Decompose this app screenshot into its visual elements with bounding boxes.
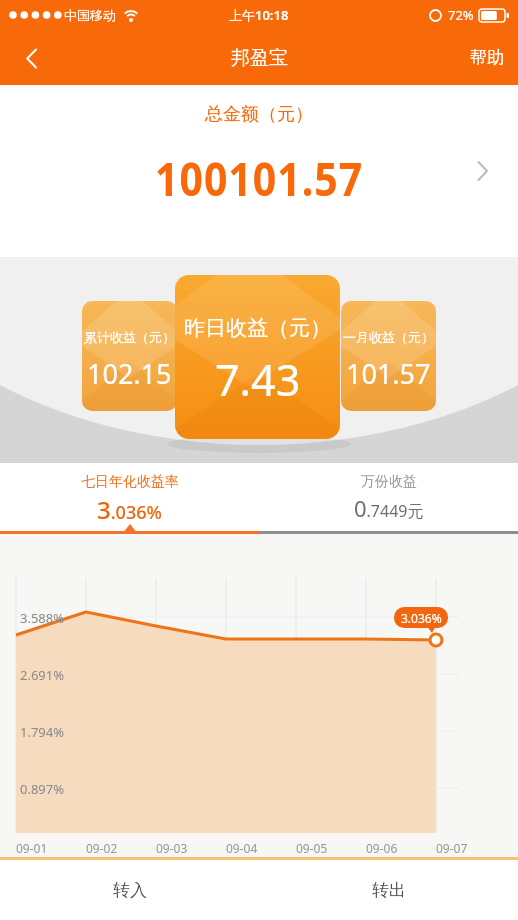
staticText: 七日年化收益率 xyxy=(81,473,179,491)
staticText: 3.588% xyxy=(20,609,65,627)
staticText: 0.897% xyxy=(20,780,65,798)
button[interactable]: 万份收益 xyxy=(259,463,518,531)
staticText: 100101.57 xyxy=(155,146,364,210)
staticText: 帮助 xyxy=(470,47,504,68)
button[interactable]: 昨日收益（元） xyxy=(175,275,340,439)
staticText: 上午10:18 xyxy=(229,6,289,24)
staticText: 万份收益 xyxy=(361,473,417,491)
button[interactable]: 转出 xyxy=(259,860,518,920)
button[interactable]: 七日年化收益率 xyxy=(0,463,259,531)
staticText: 101.57 xyxy=(346,355,431,392)
button[interactable]: 累计收益（元） xyxy=(82,301,177,411)
staticText: 转出 xyxy=(372,880,406,901)
button[interactable]: 帮助 xyxy=(456,35,518,80)
button[interactable]: 转入 xyxy=(0,860,259,920)
button[interactable]: 总金额（元） xyxy=(0,85,518,257)
staticText: 09-06 xyxy=(366,840,398,856)
staticText: 09-04 xyxy=(226,840,258,856)
staticText: 1.794% xyxy=(20,723,65,741)
button[interactable]: 一月收益（元） xyxy=(341,301,436,411)
staticText: 72% xyxy=(448,6,474,24)
staticText: 09-07 xyxy=(436,840,468,856)
button[interactable] xyxy=(16,43,46,73)
staticText: 一月收益（元） xyxy=(343,329,434,345)
staticText: 邦盈宝 xyxy=(231,46,288,70)
staticText: 09-02 xyxy=(86,840,118,856)
staticText: 转入 xyxy=(113,880,147,901)
staticText: 7.43 xyxy=(215,350,301,409)
staticText: 中国移动 xyxy=(64,7,116,23)
staticText: 2.691% xyxy=(20,666,65,684)
staticText: 09-05 xyxy=(296,840,328,856)
staticText: 102.15 xyxy=(87,355,172,392)
staticText: 0.7449元 xyxy=(354,493,424,523)
staticText: 昨日收益（元） xyxy=(184,315,331,341)
staticText: 3.036% xyxy=(401,610,442,626)
staticText: 累计收益（元） xyxy=(84,329,175,345)
staticText: 09-03 xyxy=(156,840,188,856)
staticText: 3.036% xyxy=(97,493,162,526)
staticText: 09-01 xyxy=(16,840,48,856)
staticText: 总金额（元） xyxy=(205,103,313,126)
